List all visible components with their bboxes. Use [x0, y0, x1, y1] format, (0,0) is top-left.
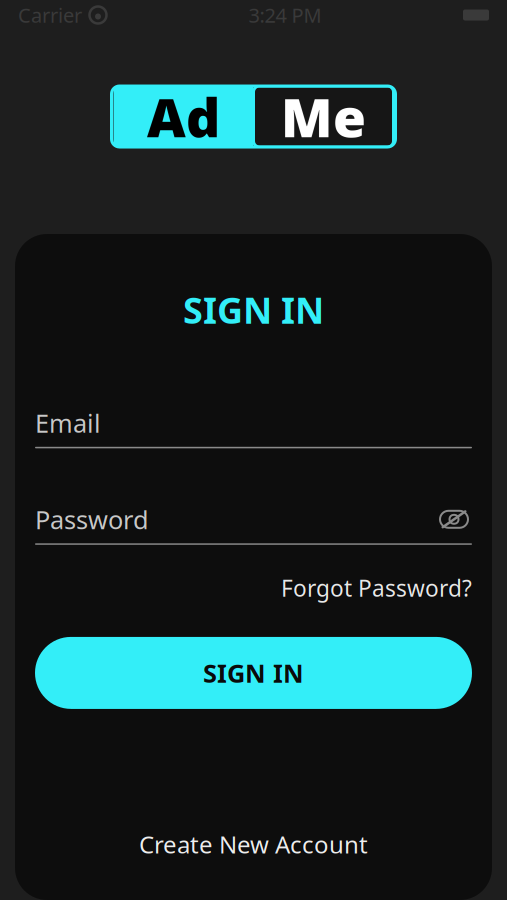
staticText: Ad: [147, 81, 220, 152]
staticText: Carrier: [18, 2, 82, 28]
staticText: 3:24 PM: [248, 2, 321, 28]
staticText: Password: [35, 502, 149, 536]
button[interactable]: Forgot Password?: [281, 567, 472, 609]
staticText: Me: [281, 81, 366, 152]
staticText: SIGN IN: [203, 656, 304, 690]
staticText: Email: [35, 406, 101, 440]
staticText: Forgot Password?: [281, 573, 472, 603]
staticText: Create New Account: [139, 828, 368, 860]
button[interactable]: SIGN IN: [35, 637, 472, 709]
button[interactable]: Create New Account: [123, 820, 384, 868]
staticText: SIGN IN: [183, 286, 324, 334]
button[interactable]: Show password: [436, 504, 472, 534]
